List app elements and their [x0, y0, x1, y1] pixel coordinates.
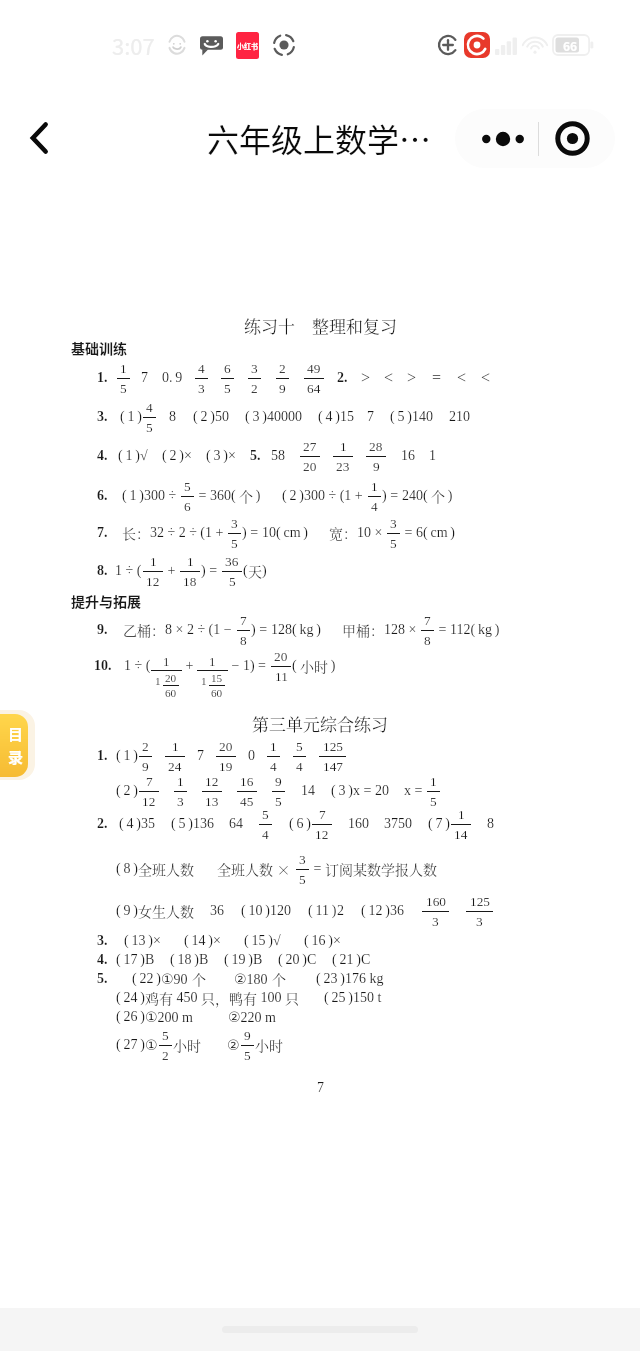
staticText: 4 — [198, 361, 205, 376]
staticText: 360( — [210, 488, 239, 504]
staticText: 9 — [142, 759, 149, 774]
staticText: 0. 9 — [162, 370, 183, 386]
staticText: ( 27 ) — [116, 1037, 145, 1053]
staticText: 5 — [244, 1048, 251, 1063]
staticText: 录 — [8, 746, 24, 768]
staticText: 8 — [240, 633, 247, 648]
button[interactable]: Back — [13, 112, 65, 164]
staticText: 7. — [97, 525, 108, 541]
staticText: 20 — [303, 459, 317, 474]
staticText: 150 t — [353, 990, 382, 1006]
staticText: 4. — [97, 448, 108, 464]
staticText: 1. — [97, 748, 108, 764]
staticText: 第三单元综合练习 — [252, 711, 388, 735]
staticText: ( 9 ) — [116, 903, 138, 919]
staticText: 4 — [262, 827, 269, 842]
staticText: ( — [243, 563, 248, 579]
staticText: 小时 — [300, 656, 328, 676]
staticText: 10 × — [357, 525, 386, 541]
staticText: 120 — [270, 903, 291, 919]
staticText: 1. — [97, 370, 108, 386]
staticText: 目 — [8, 723, 24, 745]
staticText: 3 — [231, 516, 238, 531]
staticText: 个 — [272, 969, 286, 989]
staticText: ) = — [201, 563, 221, 579]
staticText: = — [401, 525, 416, 541]
staticText: 24 — [168, 759, 182, 774]
staticText: 14 — [301, 783, 315, 799]
staticText: 5 — [296, 739, 303, 754]
button[interactable]: More and close — [455, 109, 615, 168]
staticText: 60 — [211, 687, 223, 699]
staticText: 19 — [219, 759, 233, 774]
staticText: 136 — [193, 816, 214, 832]
staticText: 3 — [198, 381, 205, 396]
staticText: 小时 — [255, 1035, 283, 1055]
staticText: 8 × 2 ÷ (1 − — [165, 622, 236, 638]
staticText: 10. — [94, 658, 112, 674]
staticText: 1 — [429, 448, 436, 464]
staticText: ) — [253, 488, 261, 504]
staticText: ( 12 ) — [361, 903, 390, 919]
staticText: 1 — [430, 774, 437, 789]
staticText: 5 — [146, 420, 153, 435]
staticText: 1 — [201, 675, 207, 687]
staticText: B — [145, 952, 155, 968]
staticText: 6. — [97, 488, 108, 504]
staticText: 112( kg ) — [450, 622, 500, 638]
staticText: 5 — [299, 872, 306, 887]
staticText: C — [361, 952, 371, 968]
staticText: 5 — [390, 536, 397, 551]
staticText: 六年级上数学… — [207, 115, 432, 161]
staticText: ( 4 ) — [119, 816, 141, 832]
staticText: 10( cm ) — [262, 525, 309, 541]
staticText: ( 2 ) — [282, 488, 304, 504]
staticText: 128( kg ) — [271, 622, 321, 638]
staticText: ( 5 ) — [171, 816, 193, 832]
staticText: 全班人数 — [138, 859, 194, 879]
staticText: = — [435, 622, 450, 638]
staticText: = — [195, 488, 210, 504]
staticText: ( 5 ) — [390, 409, 412, 425]
staticText: 2 — [337, 903, 344, 919]
staticText: 176 kg — [345, 971, 384, 987]
staticText: 3:07 — [112, 29, 155, 61]
staticText: 个 — [192, 969, 206, 989]
button[interactable]: 目录 — [0, 714, 28, 777]
staticText: 提升与拓展 — [71, 591, 141, 611]
staticText: − 1) = — [228, 658, 270, 674]
staticText: 1 — [340, 439, 347, 454]
staticText: ( 3 ) — [331, 783, 353, 799]
staticText: 450 — [173, 990, 201, 1006]
staticText: 50 — [215, 409, 229, 425]
staticText: 32 ÷ 2 ÷ (1 + — [150, 525, 227, 541]
staticText: ) — [262, 563, 267, 579]
staticText: 9. — [97, 622, 108, 638]
staticText: 6( cm ) — [416, 525, 456, 541]
staticText: 28 — [369, 439, 383, 454]
staticText: 300 ÷ — [144, 488, 180, 504]
staticText: 5 — [262, 807, 269, 822]
staticText: 乙桶： — [123, 620, 165, 640]
staticText: 160 — [426, 894, 446, 909]
staticText: 27 — [303, 439, 317, 454]
staticText: 1 ÷ ( — [115, 563, 142, 579]
staticText: × — [213, 933, 221, 949]
staticText: < — [457, 369, 467, 387]
staticText: 甲桶： — [342, 620, 384, 640]
staticText: 8. — [97, 563, 108, 579]
staticText: ) — [445, 488, 453, 504]
staticText: B — [253, 952, 263, 968]
staticText: 12 — [205, 774, 219, 789]
staticText: 7 — [319, 807, 326, 822]
staticText: 只，鸭有 — [201, 988, 257, 1008]
staticText: × — [333, 933, 341, 949]
staticText: 3 — [476, 914, 483, 929]
staticText: ( 16 ) — [304, 933, 333, 949]
staticText: 16 — [240, 774, 254, 789]
staticText: ②180 — [234, 971, 272, 987]
staticText: 3. — [97, 409, 108, 425]
staticText: 4. — [97, 952, 108, 968]
staticText: 6 — [184, 499, 191, 514]
staticText: 7 — [146, 774, 153, 789]
